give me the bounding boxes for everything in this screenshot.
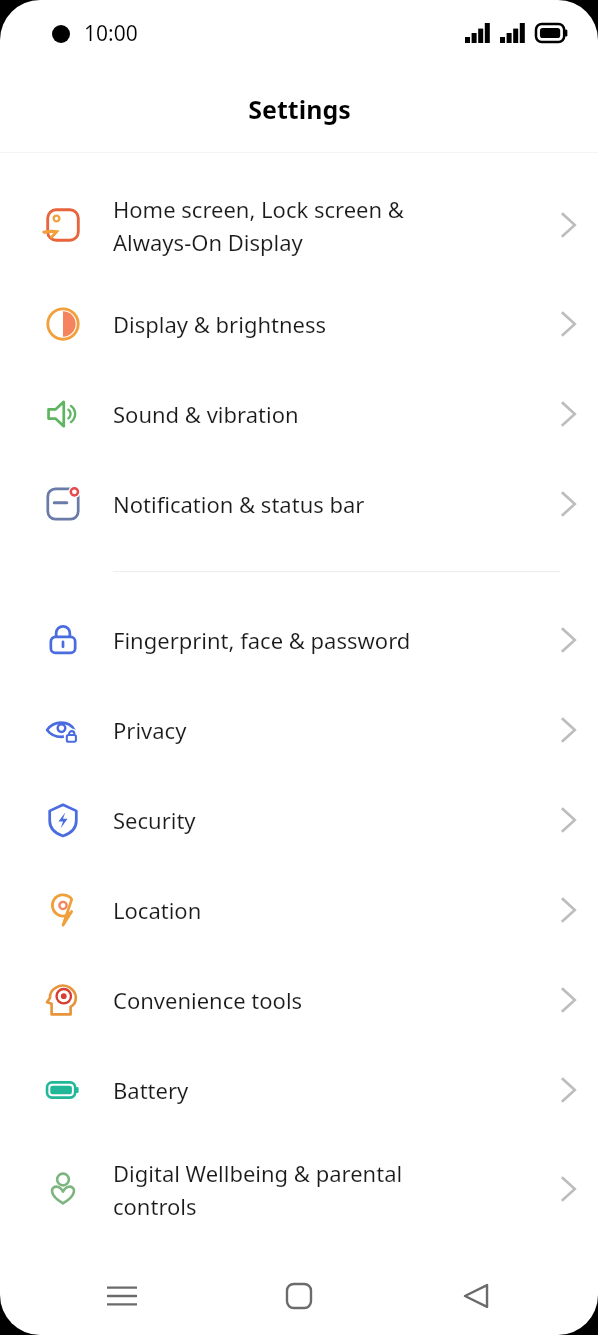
- staticText: Security: [113, 805, 538, 835]
- button[interactable]: Battery: [0, 1045, 598, 1135]
- staticText: Digital Wellbeing & parental controls: [113, 1158, 538, 1221]
- staticText: Home screen, Lock screen & Always-On Dis…: [113, 194, 538, 257]
- button[interactable]: Sound & vibration: [0, 369, 598, 459]
- button[interactable]: Location: [0, 865, 598, 955]
- staticText: Location: [113, 895, 538, 925]
- staticText: Sound & vibration: [113, 399, 538, 429]
- staticText: Convenience tools: [113, 985, 538, 1015]
- button[interactable]: Security: [0, 775, 598, 865]
- staticText: Battery: [113, 1075, 538, 1105]
- button[interactable]: Display & brightness: [0, 279, 598, 369]
- button[interactable]: Home: [244, 1257, 354, 1335]
- button[interactable]: Digital Wellbeing & parental controls: [0, 1135, 598, 1243]
- button[interactable]: Notification & status bar: [0, 459, 598, 549]
- staticText: 10:00: [84, 19, 138, 48]
- button[interactable]: Home screen, Lock screen & Always-On Dis…: [0, 171, 598, 279]
- staticText: Fingerprint, face & password: [113, 625, 538, 655]
- button[interactable]: Privacy: [0, 685, 598, 775]
- button[interactable]: Back: [421, 1257, 531, 1335]
- staticText: Settings: [248, 92, 351, 126]
- button[interactable]: Fingerprint, face & password: [0, 595, 598, 685]
- button[interactable]: Recent apps: [67, 1257, 177, 1335]
- staticText: Privacy: [113, 715, 538, 745]
- staticText: Notification & status bar: [113, 489, 538, 519]
- button[interactable]: Convenience tools: [0, 955, 598, 1045]
- staticText: Display & brightness: [113, 309, 538, 339]
